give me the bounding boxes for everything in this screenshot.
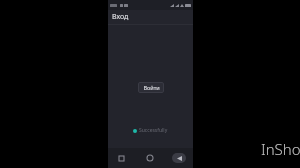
button[interactable]: Home [144, 152, 156, 164]
button[interactable]: Recent apps [115, 152, 127, 164]
staticText: InShot [261, 139, 300, 159]
staticText: Вход [112, 12, 129, 22]
button[interactable]: Войти [138, 82, 164, 93]
staticText: Successfully [139, 127, 168, 134]
button[interactable]: Back [172, 153, 186, 163]
staticText: Войти [143, 84, 160, 91]
